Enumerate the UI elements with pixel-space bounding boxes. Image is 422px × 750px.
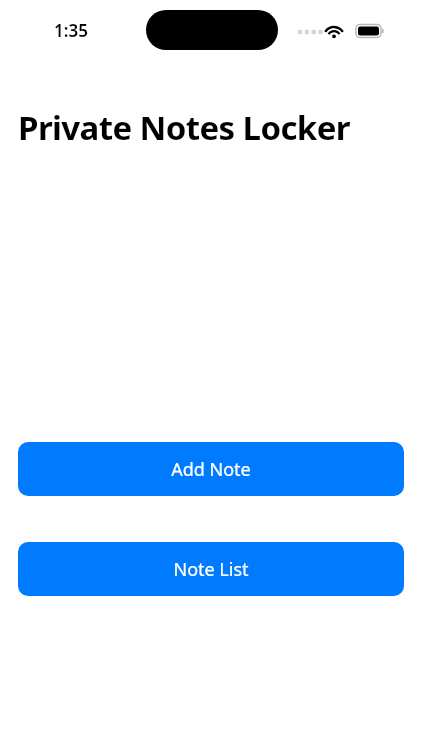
staticText: Note List	[173, 557, 249, 582]
button[interactable]: Add Note	[18, 442, 404, 496]
staticText: 1:35	[54, 19, 88, 42]
staticText: Private Notes Locker	[18, 105, 350, 150]
staticText: Add Note	[171, 457, 251, 482]
button[interactable]: Note List	[18, 542, 404, 596]
